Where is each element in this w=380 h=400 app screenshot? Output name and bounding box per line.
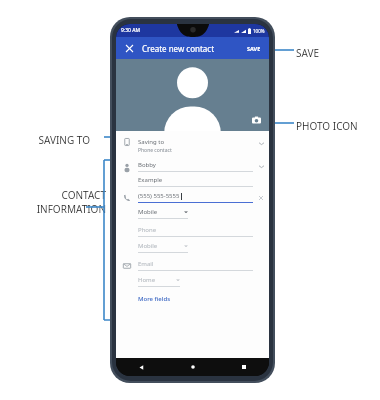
staticText: Create new contact (142, 43, 215, 54)
staticText: Phone contact (138, 147, 172, 154)
staticText: Home (138, 276, 156, 284)
staticText: 100% (253, 28, 265, 34)
staticText: Mobile (138, 242, 158, 250)
staticText: CONTACT (22, 188, 106, 202)
staticText: More fields (138, 295, 171, 303)
button[interactable]: (555) 555-5555 (138, 192, 253, 203)
button[interactable]: Bobby (138, 161, 253, 172)
button[interactable]: Change photo (251, 115, 262, 126)
button[interactable]: More fields (138, 295, 171, 303)
button[interactable]: Email (138, 260, 253, 271)
staticText: PHOTO ICON (296, 119, 358, 133)
staticText: SAVE (247, 45, 261, 52)
button[interactable]: Back (116, 365, 167, 370)
button[interactable]: Home (167, 365, 218, 369)
staticText: (555) 555-5555 (138, 192, 180, 200)
staticText: Email (138, 260, 154, 268)
button[interactable]: Saving to (116, 131, 269, 154)
staticText: 9:30 AM (121, 27, 141, 34)
button[interactable]: Mobile (138, 208, 188, 219)
button[interactable]: Example (138, 176, 253, 187)
staticText: Example (138, 176, 163, 184)
button[interactable]: Mobile (138, 242, 188, 253)
staticText: Bobby (138, 161, 156, 169)
staticText: INFORMATION (22, 202, 106, 216)
button[interactable]: SAVE (245, 43, 263, 54)
staticText: SAVING TO (14, 133, 90, 147)
button[interactable]: Recents (218, 365, 269, 369)
staticText: Saving to (138, 138, 165, 146)
button[interactable]: Home (138, 276, 180, 287)
button[interactable]: Close (122, 41, 136, 55)
button[interactable]: Phone (138, 226, 253, 237)
staticText: Phone (138, 226, 157, 234)
staticText: Mobile (138, 208, 158, 216)
staticText: SAVE (296, 46, 320, 60)
